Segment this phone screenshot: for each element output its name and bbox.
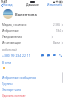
staticText: Уведомления [2,35,22,39]
staticText: Удалить контакт [2,94,26,98]
staticText: 9:41 [1,0,8,4]
staticText: Медиа, ссылки и документы [2,23,27,27]
staticText: Группы [2,82,13,86]
button[interactable]: Сообщение [40,53,44,57]
staticText: Исчезающие сообщения [2,41,27,45]
staticText: Избранные сообщения [2,76,36,80]
button[interactable]: Избранные сообщения [0,75,64,81]
button[interactable]: Группы [0,81,64,87]
button[interactable]: Фото профиля [3,9,13,19]
staticText: Избранные сообщения [2,29,29,33]
staticText: В сети [2,61,12,65]
button[interactable]: Звонок [58,53,62,57]
button[interactable]: Чат [46,53,50,57]
staticText: 2 365 [53,23,61,27]
button[interactable]: Медиа, ссылки и документы [0,22,64,28]
staticText: Выкл [53,41,61,45]
staticText: Назад [3,3,13,7]
staticText: Валентина [15,12,37,17]
button[interactable]: Назад [0,3,14,8]
button[interactable]: Избранные сообщения [0,28,64,34]
staticText: +380 99 234 22 11 [2,53,31,58]
staticText: Данные [26,3,39,7]
button[interactable]: Экспорт чата [0,87,64,93]
button[interactable]: Исчезающие сообщения [0,40,64,46]
button[interactable]: Видеозвонок [52,53,56,57]
staticText: Экспорт чата [2,88,21,92]
staticText: мобильный [2,48,17,52]
button[interactable]: Уведомления [0,34,64,40]
staticText: 184 [56,29,61,33]
button[interactable]: Изменить [47,3,64,8]
button[interactable]: Удалить контакт [0,93,64,99]
